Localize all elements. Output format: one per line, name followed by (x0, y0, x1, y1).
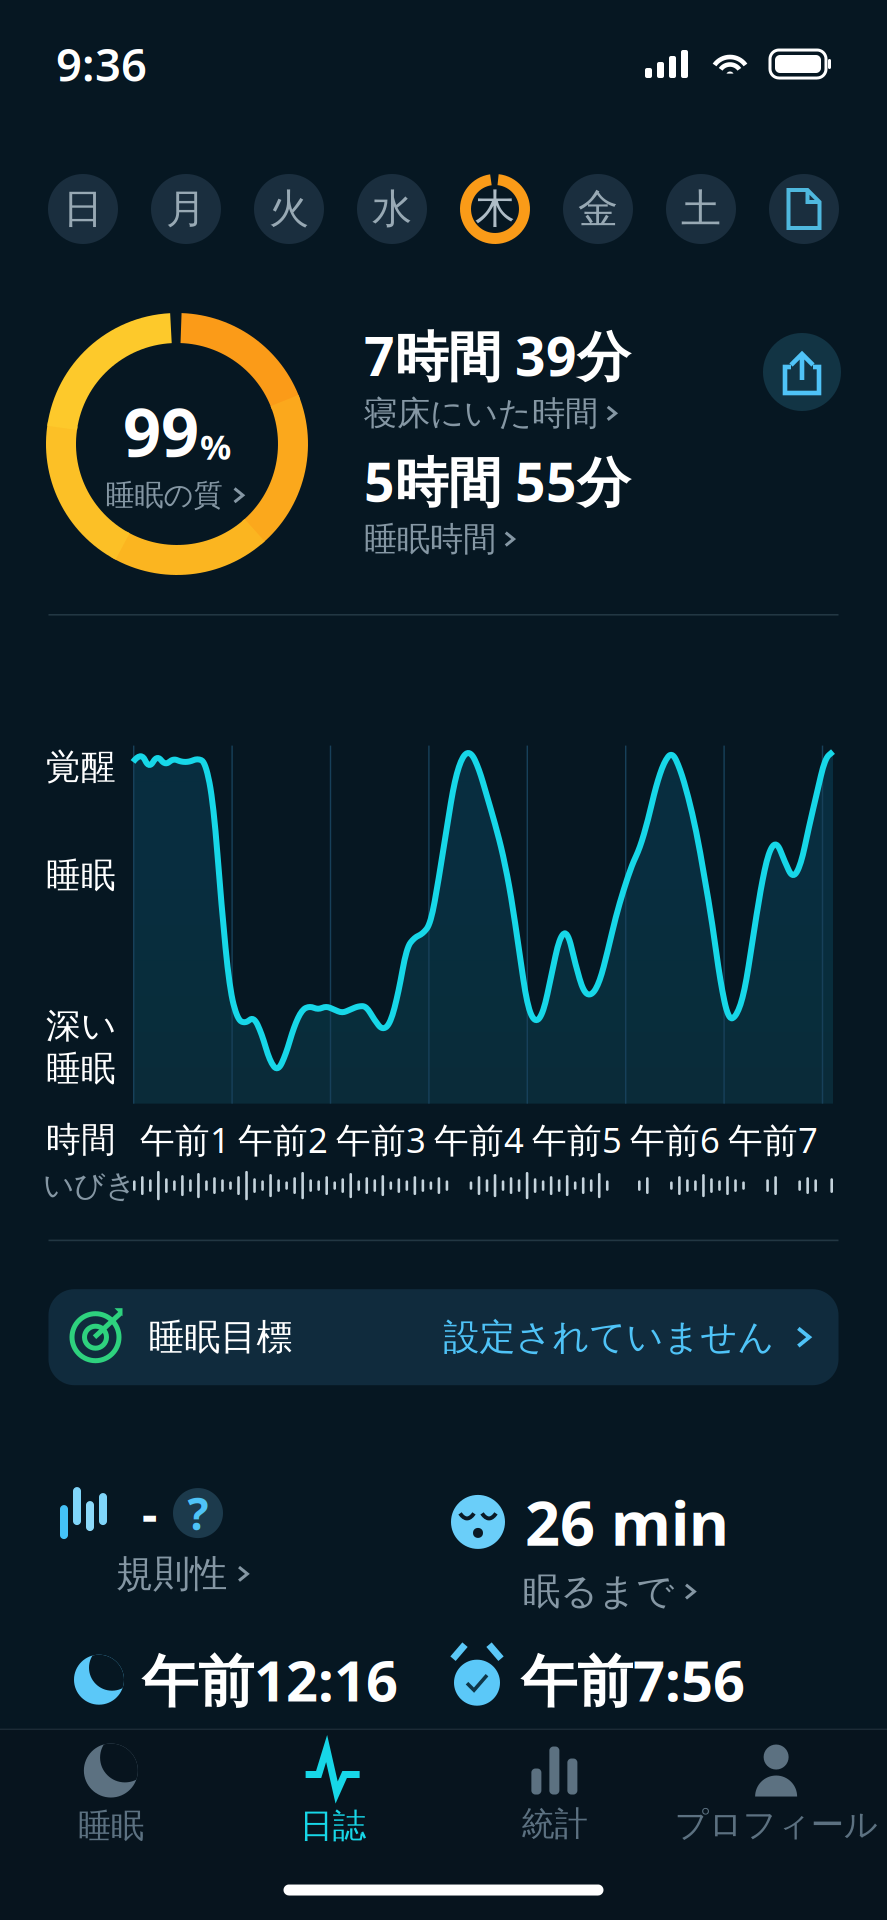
staticText: 睡眠の質 (105, 477, 222, 513)
button[interactable]: - (60, 1481, 253, 1597)
staticText: 99 (123, 387, 199, 475)
staticText: 午前7:56 (521, 1642, 745, 1717)
staticText: 睡眠時間 (364, 519, 496, 559)
staticText: 木 (475, 184, 515, 233)
button[interactable]: プロフィール (665, 1736, 887, 1854)
staticText: 統計 (521, 1803, 587, 1844)
staticText: 午前1 (140, 1117, 230, 1163)
staticText: いびき (43, 1167, 136, 1204)
staticText: 午前3 (336, 1117, 426, 1163)
staticText: 睡眠 (46, 854, 116, 897)
button[interactable]: 水 (357, 174, 427, 244)
staticText: 5時間 55分 (364, 446, 630, 517)
staticText: 設定されていません (443, 1315, 774, 1359)
button[interactable]: 午前12:16 (74, 1642, 398, 1717)
staticText: 眠るまで (523, 1569, 674, 1614)
staticText: 9:36 (56, 34, 147, 94)
staticText: 7時間 39分 (364, 320, 630, 391)
staticText: 土 (681, 184, 721, 233)
button[interactable]: 99 (46, 313, 308, 575)
button[interactable]: 睡眠目標 (48, 1289, 838, 1385)
staticText: 午前6 (630, 1117, 720, 1163)
button[interactable]: 睡眠 (0, 1736, 222, 1854)
button[interactable]: Share (763, 333, 841, 411)
button[interactable]: 統計 (443, 1736, 665, 1854)
staticText: 火 (269, 184, 309, 233)
staticText: 深い (46, 1005, 116, 1047)
button[interactable]: 土 (666, 174, 736, 244)
staticText: ? (187, 1484, 208, 1542)
button[interactable]: 金 (563, 174, 633, 244)
staticText: - (142, 1481, 157, 1545)
staticText: 午前2 (238, 1117, 328, 1163)
staticText: 26 min (525, 1481, 729, 1563)
button[interactable]: 木 (460, 174, 530, 244)
button[interactable]: 火 (254, 174, 324, 244)
staticText: 日 (63, 184, 103, 233)
staticText: 水 (372, 184, 412, 233)
staticText: 午前12:16 (142, 1642, 398, 1717)
button[interactable]: 日誌 (222, 1736, 444, 1854)
button[interactable]: 月 (151, 174, 221, 244)
staticText: 金 (578, 184, 618, 233)
button[interactable]: 26 min (451, 1481, 729, 1614)
button[interactable]: 7時間 39分 (364, 320, 630, 434)
staticText: 午前7 (728, 1117, 818, 1163)
staticText: 睡眠目標 (148, 1315, 292, 1359)
staticText: 睡眠 (78, 1805, 144, 1846)
staticText: 寝床にいた時間 (364, 393, 598, 434)
button[interactable]: Notes (769, 174, 839, 244)
button[interactable]: 午前7:56 (451, 1642, 745, 1717)
staticText: 時間 (46, 1118, 116, 1161)
staticText: 午前4 (434, 1117, 524, 1163)
staticText: % (200, 423, 231, 469)
staticText: 日誌 (300, 1805, 366, 1846)
staticText: 覚醒 (46, 746, 116, 788)
staticText: 午前5 (532, 1117, 622, 1163)
staticText: 月 (166, 184, 206, 233)
button[interactable]: 5時間 55分 (364, 446, 630, 560)
button[interactable]: 日 (48, 174, 118, 244)
staticText: 規則性 (116, 1551, 227, 1597)
staticText: プロフィール (675, 1804, 878, 1845)
staticText: 睡眠 (46, 1047, 116, 1090)
